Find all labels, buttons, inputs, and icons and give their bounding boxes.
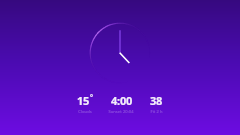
staticText: 38 <box>150 93 162 108</box>
staticText: Clouds <box>78 109 92 114</box>
staticText: Fit 2 h <box>150 109 163 114</box>
button[interactable]: 15 <box>72 93 98 114</box>
button[interactable]: 4:00 <box>104 93 138 114</box>
staticText: ° <box>90 93 93 103</box>
button[interactable]: 38 <box>144 93 168 114</box>
staticText: 15 <box>77 93 89 108</box>
button[interactable]: Analog clock showing 4:00 <box>89 22 151 84</box>
staticText: Sunset 20:04 <box>108 109 134 114</box>
staticText: 4:00 <box>111 93 132 108</box>
